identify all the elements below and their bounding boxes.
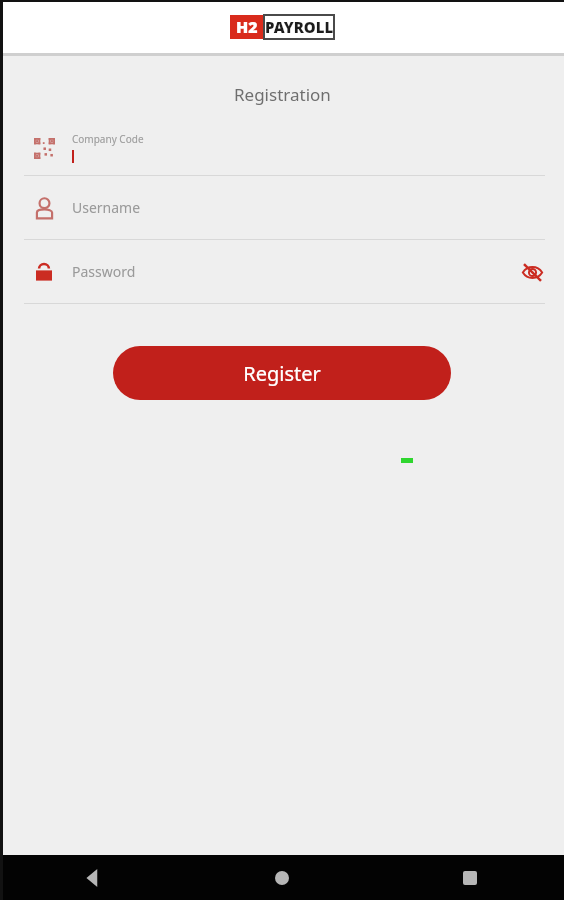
button[interactable]: Password <box>0 240 564 303</box>
button[interactable]: Back <box>0 855 188 900</box>
staticText: PAYROLL <box>265 17 334 37</box>
button[interactable]: Username <box>0 176 564 239</box>
button[interactable]: Company Code <box>0 120 564 175</box>
button[interactable]: Register <box>113 346 451 400</box>
staticText: Password <box>72 262 512 281</box>
staticText: Company Code <box>72 132 144 146</box>
staticText: H2 <box>236 16 258 38</box>
button[interactable]: Show password <box>512 252 552 292</box>
button[interactable]: Recent apps <box>376 855 564 900</box>
staticText: Username <box>72 198 546 217</box>
staticText: Register <box>243 360 321 387</box>
staticText: Registration <box>234 83 331 106</box>
button[interactable]: Home <box>188 855 376 900</box>
